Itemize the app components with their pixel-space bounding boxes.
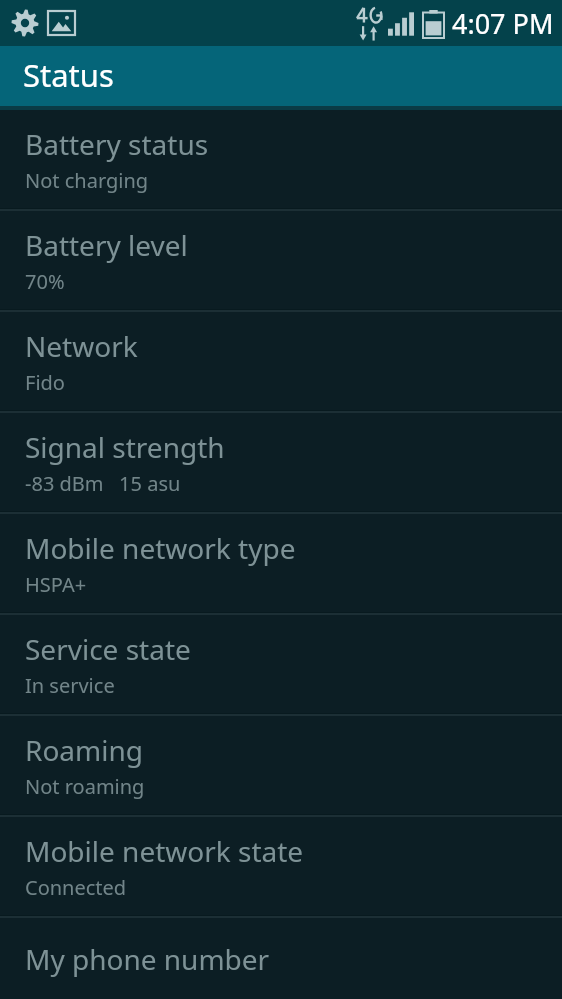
button[interactable]: Roaming — [0, 716, 562, 814]
staticText: My phone number — [25, 940, 270, 978]
button[interactable]: Battery status — [0, 110, 562, 208]
staticText: Service state — [25, 630, 191, 668]
staticText: HSPA+ — [25, 571, 87, 598]
staticText: -83 dBm 15 asu — [25, 470, 181, 497]
button[interactable]: Status — [0, 46, 562, 106]
staticText: Connected — [25, 874, 127, 901]
staticText: Network — [25, 327, 138, 365]
staticText: Fido — [25, 369, 65, 396]
button[interactable]: Mobile network state — [0, 817, 562, 915]
button[interactable]: My phone number — [0, 918, 562, 999]
staticText: Battery status — [25, 125, 209, 163]
button[interactable]: Battery level — [0, 211, 562, 309]
button[interactable]: Network — [0, 312, 562, 410]
staticText: Roaming — [25, 731, 143, 769]
staticText: Not charging — [25, 167, 149, 194]
staticText: 4:07 PM — [452, 5, 554, 42]
staticText: Not roaming — [25, 773, 145, 800]
staticText: Signal strength — [25, 428, 225, 466]
button[interactable]: Service state — [0, 615, 562, 713]
staticText: Mobile network type — [25, 529, 296, 567]
button[interactable]: Signal strength — [0, 413, 562, 511]
staticText: Status — [23, 54, 114, 96]
staticText: Battery level — [25, 226, 188, 264]
staticText: 70% — [25, 268, 65, 295]
staticText: In service — [25, 672, 115, 699]
button[interactable]: Mobile network type — [0, 514, 562, 612]
staticText: Mobile network state — [25, 832, 304, 870]
